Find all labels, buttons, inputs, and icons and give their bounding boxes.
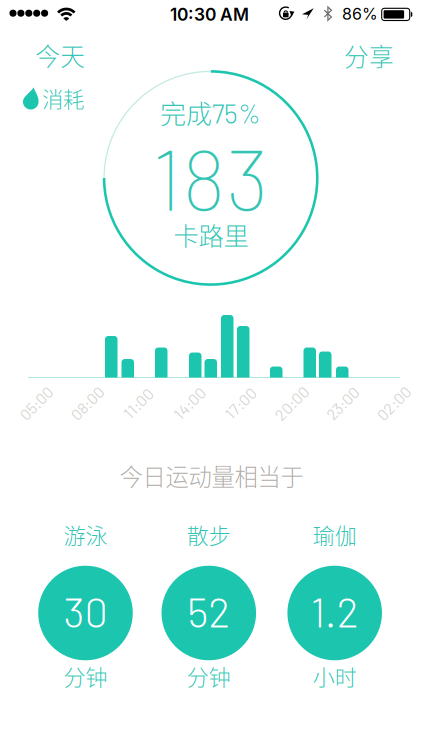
staticText: 分钟 <box>63 660 107 692</box>
staticText: 20:00 <box>271 393 312 413</box>
button[interactable]: 分享 <box>344 38 394 73</box>
staticText: 08:00 <box>67 393 107 413</box>
staticText: 23:00 <box>323 393 362 413</box>
staticText: 14:00 <box>170 393 208 413</box>
staticText: 11:00 <box>121 393 156 413</box>
staticText: 游泳 <box>63 519 107 550</box>
staticText: 瑜伽 <box>313 519 357 550</box>
staticText: 1.2 <box>311 586 359 636</box>
staticText: 卡路里 <box>173 216 248 253</box>
staticText: 52 <box>187 586 230 636</box>
button[interactable]: 消耗 <box>23 83 84 114</box>
staticText: 今日运动量相当于 <box>119 459 303 492</box>
staticText: 02:00 <box>373 393 414 413</box>
staticText: 17:00 <box>222 393 259 413</box>
staticText: 分享 <box>344 38 394 73</box>
staticText: 分钟 <box>187 660 231 692</box>
staticText: 消耗 <box>42 83 84 114</box>
staticText: 今天 <box>35 37 85 73</box>
staticText: 小时 <box>313 660 357 692</box>
button[interactable]: 今天 <box>35 37 85 73</box>
staticText: 完成75% <box>160 94 261 131</box>
staticText: 散步 <box>187 519 231 550</box>
staticText: 10:30 AM <box>170 4 249 25</box>
staticText: 05:00 <box>16 393 56 413</box>
staticText: 86% <box>342 4 378 24</box>
staticText: 30 <box>63 586 107 636</box>
staticText: 183 <box>152 125 269 228</box>
